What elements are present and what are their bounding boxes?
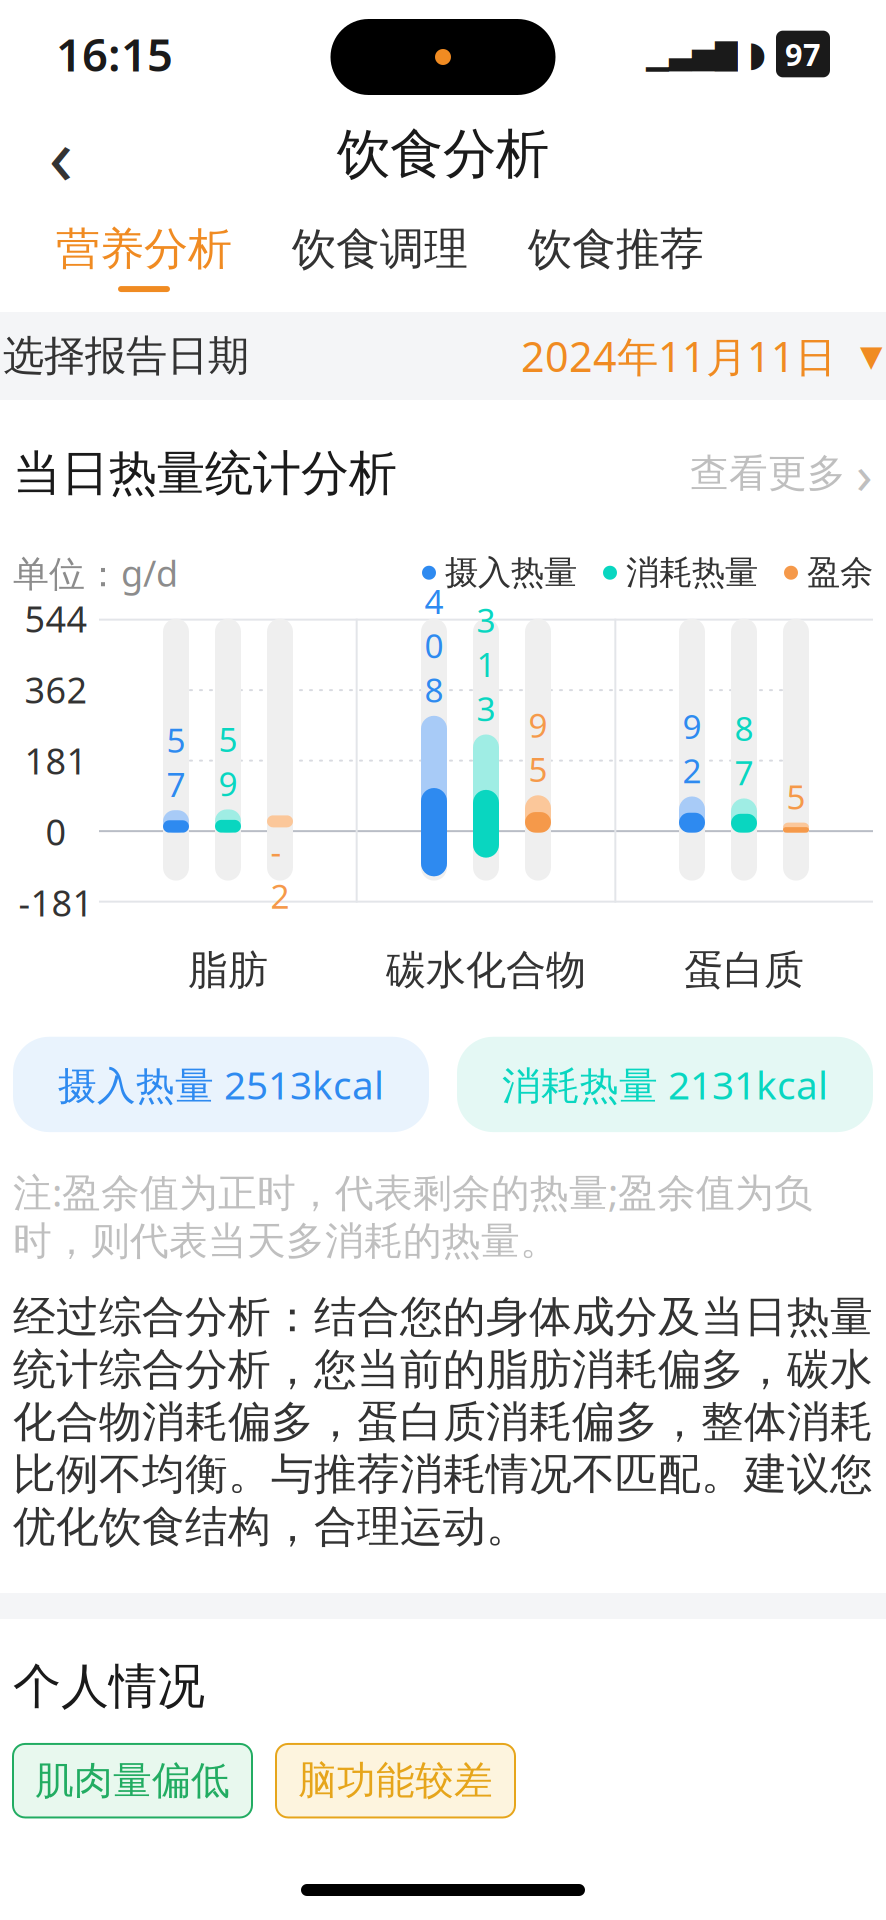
staticText: 饮食推荐 xyxy=(528,222,704,276)
staticText: 57 xyxy=(166,718,185,806)
button[interactable]: 摄入热量 2513kcal xyxy=(13,1037,429,1132)
staticText: 个人情况 xyxy=(13,1657,205,1716)
staticText: 181 xyxy=(24,737,87,784)
staticText: ▼ xyxy=(860,339,883,373)
staticText: ‹ xyxy=(48,101,73,207)
staticText: 544 xyxy=(24,595,87,642)
staticText: 92 xyxy=(682,704,701,792)
button[interactable]: 查看更多 xyxy=(690,438,873,509)
button[interactable]: 选择报告日期 xyxy=(0,312,886,400)
staticText: 消耗热量 xyxy=(626,552,758,593)
staticText: 消耗热量 2131kcal xyxy=(502,1059,828,1110)
staticText: 营养分析 xyxy=(56,222,232,276)
staticText: 当日热量统计分析 xyxy=(13,444,397,503)
staticText: 肌肉量偏低 xyxy=(35,1757,230,1804)
staticText: 经过综合分析：结合您的身体成分及当日热量统计综合分析，您当前的脂肪消耗偏多，碳水… xyxy=(13,1291,873,1553)
staticText: 5 xyxy=(786,774,805,819)
button[interactable]: 营养分析 xyxy=(48,222,240,292)
staticText: 碳水化合物 xyxy=(386,946,586,995)
staticText: 查看更多 xyxy=(690,450,846,497)
staticText: 选择报告日期 xyxy=(3,331,249,381)
staticText: 饮食分析 xyxy=(337,121,549,187)
button[interactable]: 返回 xyxy=(26,119,96,189)
staticText: 362 xyxy=(24,666,87,713)
staticText: 摄入热量 2513kcal xyxy=(58,1059,384,1110)
staticText: ▁▃▅▇ xyxy=(646,37,738,71)
staticText: ◗ xyxy=(748,34,766,74)
staticText: 87 xyxy=(734,706,753,794)
staticText: -2 xyxy=(270,829,289,918)
staticText: -181 xyxy=(18,879,93,926)
button[interactable]: 脑功能较差 xyxy=(276,1744,515,1817)
staticText: 脂肪 xyxy=(188,946,268,995)
button[interactable]: 饮食调理 xyxy=(284,222,476,292)
staticText: 408 xyxy=(424,579,443,712)
staticText: 313 xyxy=(476,598,495,730)
staticText: 97 xyxy=(785,34,821,74)
staticText: 16:15 xyxy=(56,24,173,84)
staticText: 95 xyxy=(528,703,547,791)
button[interactable]: 饮食推荐 xyxy=(520,222,712,292)
staticText: 饮食调理 xyxy=(292,222,468,276)
button[interactable]: 消耗热量 2131kcal xyxy=(457,1037,873,1132)
staticText: 脑功能较差 xyxy=(298,1757,493,1804)
staticText: › xyxy=(856,438,873,509)
staticText: 注:盈余值为正时，代表剩余的热量;盈余值为负时，则代表当天多消耗的热量。 xyxy=(13,1166,813,1265)
staticText: 59 xyxy=(218,717,237,805)
staticText: 盈余 xyxy=(807,552,873,593)
staticText: 2024年11月11日 xyxy=(521,329,836,383)
staticText: 0 xyxy=(45,808,66,855)
staticText: 蛋白质 xyxy=(684,946,804,995)
button[interactable]: 肌肉量偏低 xyxy=(13,1744,252,1817)
staticText: 单位：g/d xyxy=(13,549,178,597)
staticText: 摄入热量 xyxy=(445,552,577,593)
